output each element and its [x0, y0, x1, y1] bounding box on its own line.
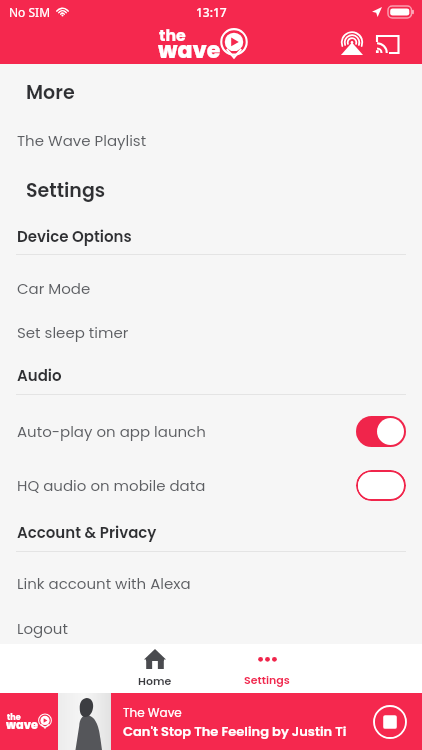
staticText: Auto-play on app launch — [17, 421, 206, 442]
staticText: Set sleep timer — [17, 322, 129, 343]
staticText: Device Options — [17, 226, 132, 247]
staticText: the — [7, 712, 21, 723]
button[interactable]: Logout — [0, 607, 422, 649]
staticText: wave — [158, 35, 221, 66]
staticText: the — [159, 24, 186, 46]
button[interactable]: Set sleep timer — [0, 311, 422, 353]
staticText: wave — [6, 717, 38, 733]
button[interactable]: Auto-play on app launch — [0, 410, 422, 452]
button[interactable]: Settings — [222, 644, 312, 693]
staticText: Account & Privacy — [17, 522, 157, 543]
button[interactable]: Cast — [371, 28, 403, 60]
staticText: Car Mode — [17, 278, 91, 299]
staticText: Audio — [17, 365, 62, 386]
button[interactable]: AirPlay — [336, 28, 368, 60]
staticText: No SIM — [9, 4, 51, 20]
staticText: HQ audio on mobile data — [17, 475, 206, 496]
button[interactable]: The Wave — [0, 693, 58, 750]
staticText: More — [26, 79, 75, 106]
staticText: The Wave Playlist — [17, 130, 147, 151]
staticText: Home — [138, 673, 172, 688]
staticText: 13:17 — [196, 4, 227, 20]
button[interactable]: Car Mode — [0, 267, 422, 309]
button[interactable]: Stop — [373, 705, 407, 739]
staticText: Settings — [26, 177, 106, 204]
staticText: The Wave — [123, 704, 182, 721]
button[interactable]: HQ audio on mobile data — [0, 464, 422, 506]
button[interactable]: Link account with Alexa — [0, 562, 422, 604]
button[interactable]: Home — [110, 644, 200, 693]
staticText: Settings — [244, 672, 290, 687]
button[interactable]: The Wave Playlist — [0, 119, 422, 161]
staticText: Link account with Alexa — [17, 573, 191, 594]
staticText: Can't Stop The Feeling by Justin Ti — [123, 722, 347, 740]
staticText: Logout — [17, 618, 68, 639]
